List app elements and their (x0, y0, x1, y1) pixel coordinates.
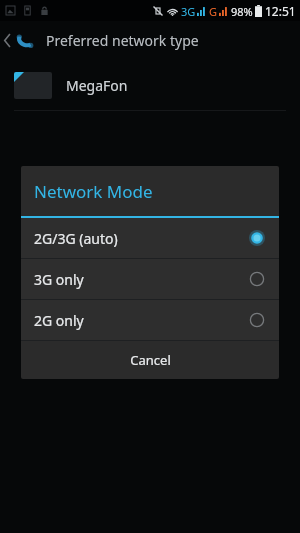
staticText: 98% (231, 4, 253, 19)
staticText: MegaFon (66, 76, 128, 95)
staticText: 3G (181, 4, 196, 19)
button[interactable]: Navigate up (0, 21, 40, 60)
button[interactable]: Cancel (21, 341, 279, 379)
staticText: 2G/3G (auto) (34, 229, 118, 248)
staticText: G (209, 4, 218, 19)
staticText: 12:51 (265, 3, 296, 19)
button[interactable]: 2G/3G (auto) (21, 218, 279, 258)
staticText: Cancel (130, 351, 171, 369)
button[interactable]: 2G only (21, 300, 279, 340)
staticText: 3G only (34, 270, 84, 289)
button[interactable]: 3G only (21, 259, 279, 299)
staticText: Preferred network type (46, 31, 199, 50)
staticText: 2G only (34, 311, 84, 330)
button[interactable]: MegaFon (0, 60, 300, 110)
staticText: Network Mode (34, 180, 153, 203)
